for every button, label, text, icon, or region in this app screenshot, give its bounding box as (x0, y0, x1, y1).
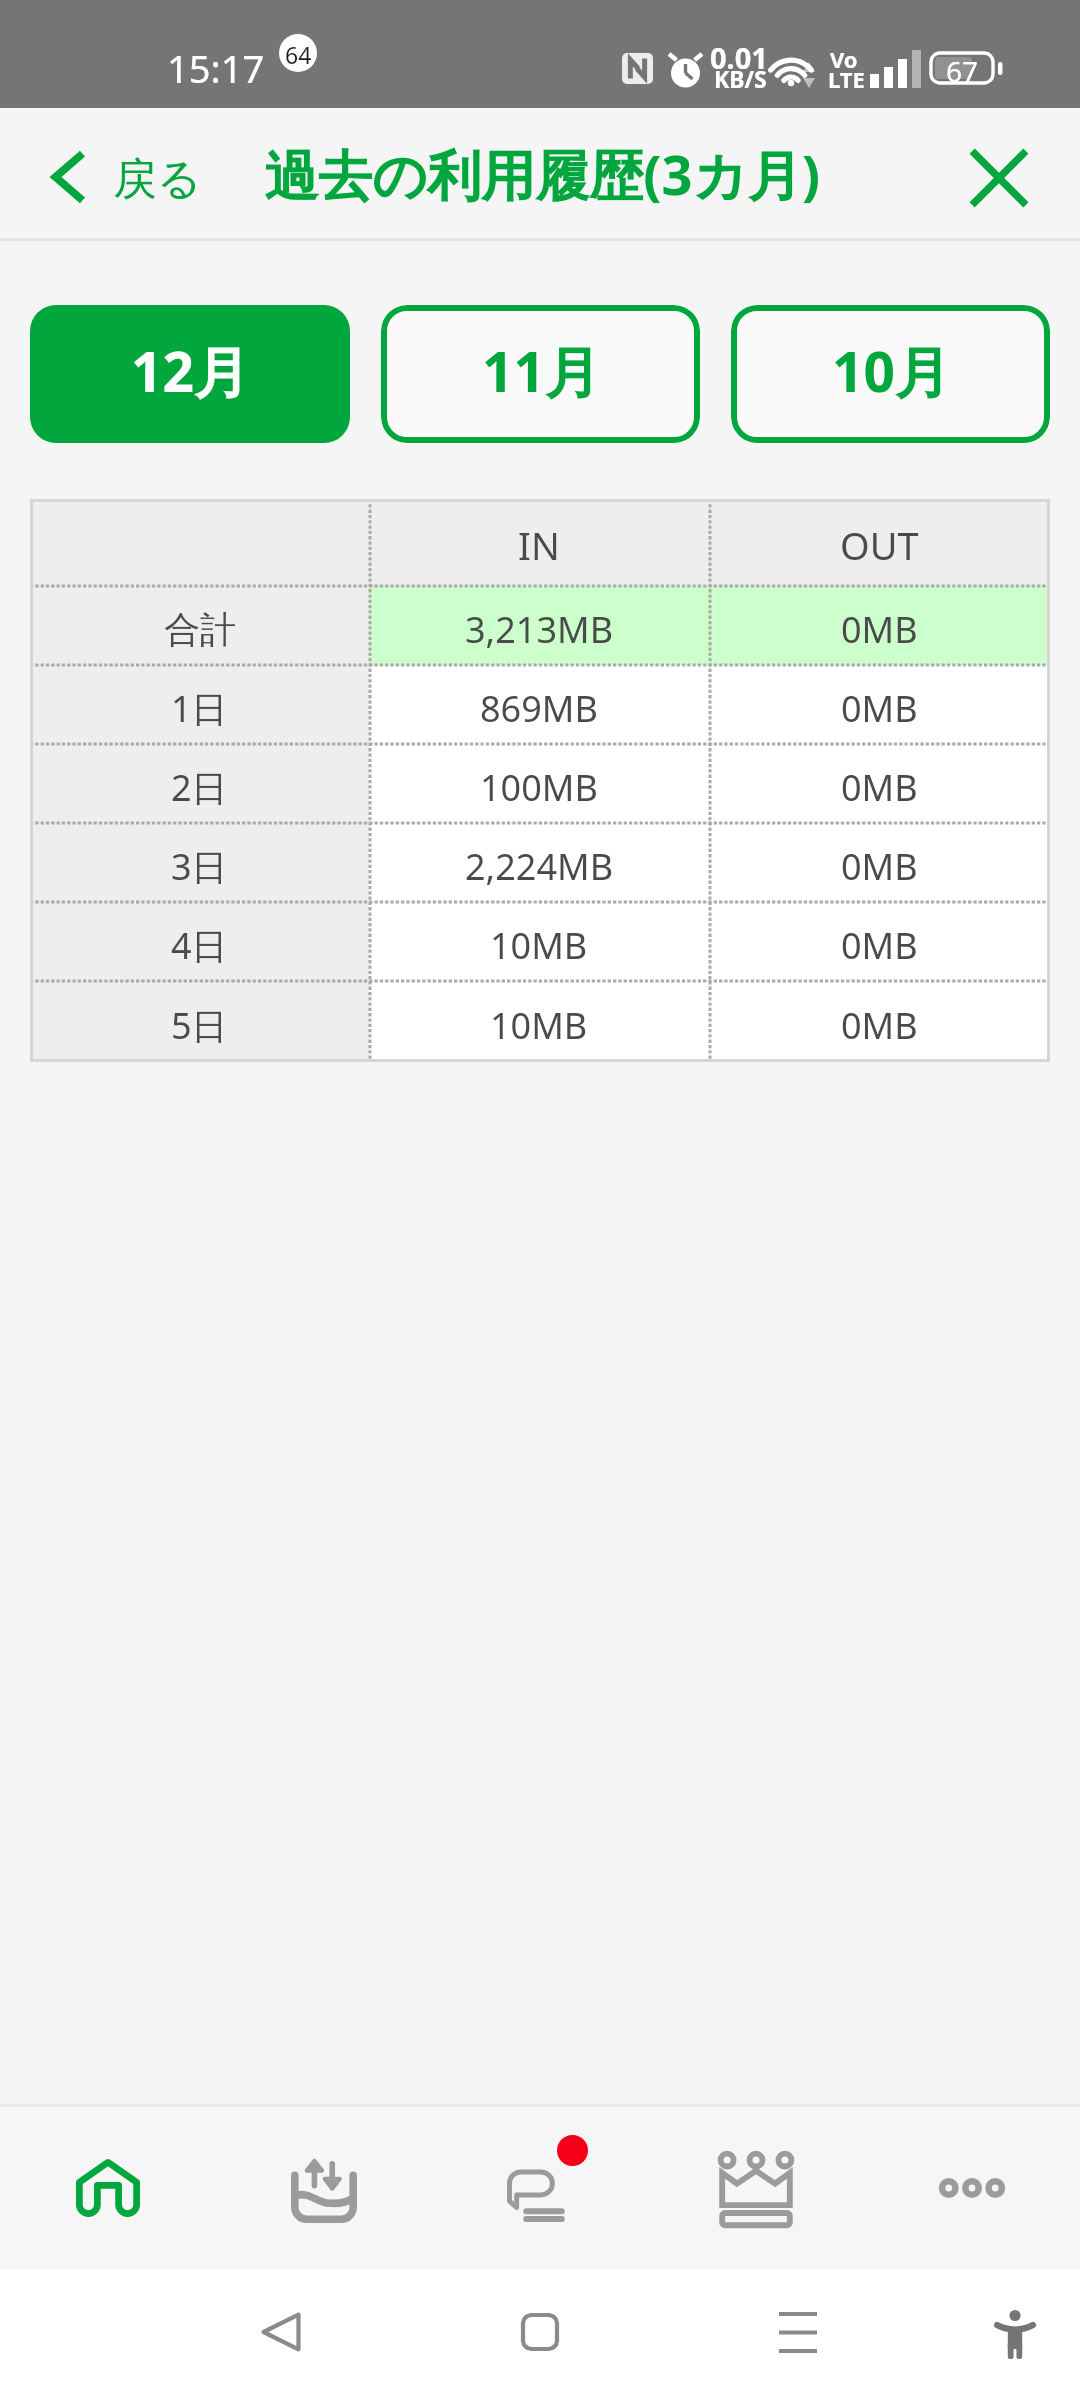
staticText: LTE (828, 64, 865, 94)
staticText: 0.01 (710, 38, 768, 77)
staticText: 過去の利用履歴(3カ月) (264, 137, 821, 211)
staticText: 64 (285, 39, 312, 70)
staticText: 10MB (490, 921, 588, 970)
staticText: 4日 (171, 921, 228, 970)
staticText: 0MB (841, 605, 918, 654)
staticText: 2日 (171, 763, 228, 812)
button[interactable]: Rewards (648, 2107, 864, 2269)
staticText: 3日 (171, 842, 228, 891)
staticText: Vo (830, 44, 858, 74)
staticText: KB/S (714, 63, 767, 94)
staticText: 2,224MB (465, 842, 614, 891)
staticText: 1日 (171, 684, 228, 733)
button[interactable]: Close (945, 122, 1080, 224)
staticText: 869MB (480, 684, 598, 733)
staticText: 11月 (482, 333, 600, 408)
button[interactable]: Recent apps (757, 2291, 839, 2373)
staticText: 10MB (490, 1001, 588, 1050)
button[interactable]: 12月 (30, 305, 350, 443)
button[interactable]: 11月 (381, 305, 700, 443)
button[interactable]: Accessibility (974, 2294, 1056, 2376)
button[interactable]: Messages (432, 2107, 648, 2269)
staticText: 0MB (841, 1001, 918, 1050)
staticText: 100MB (480, 763, 598, 812)
staticText: OUT (840, 519, 919, 571)
staticText: 戻る (113, 152, 203, 207)
staticText: 0MB (841, 684, 918, 733)
staticText: IN (518, 519, 560, 571)
button[interactable]: 10月 (731, 305, 1050, 443)
staticText: 3,213MB (465, 605, 614, 654)
staticText: 12月 (131, 333, 249, 408)
staticText: 10月 (832, 333, 950, 408)
staticText: 67 (946, 52, 979, 90)
button[interactable]: Home (499, 2291, 581, 2373)
button[interactable]: 戻る (0, 124, 233, 223)
staticText: 0MB (841, 763, 918, 812)
staticText: 5日 (171, 1001, 228, 1050)
staticText: 0MB (841, 842, 918, 891)
button[interactable]: Data usage (216, 2107, 432, 2269)
staticText: 合計 (164, 607, 236, 652)
staticText: 15:17 (167, 42, 265, 94)
button[interactable]: More (864, 2107, 1080, 2269)
button[interactable]: Home (0, 2107, 216, 2269)
button[interactable]: Back (240, 2291, 322, 2373)
staticText: 0MB (841, 921, 918, 970)
